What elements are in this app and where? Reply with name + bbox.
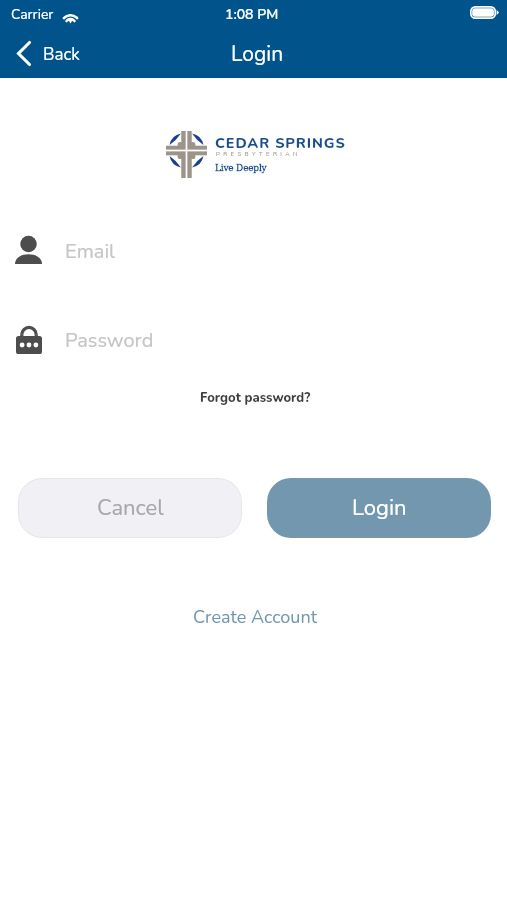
button[interactable]: Forgot password? bbox=[192, 381, 319, 415]
button[interactable]: Create Account bbox=[185, 597, 325, 638]
staticText: PRESBYTERIAN bbox=[216, 150, 301, 158]
staticText: Carrier bbox=[11, 5, 54, 24]
button[interactable]: Back bbox=[8, 33, 89, 73]
staticText: Live Deeply bbox=[215, 162, 267, 174]
button[interactable]: Cancel bbox=[18, 478, 242, 538]
other: Back bbox=[17, 41, 31, 66]
staticText: Login bbox=[231, 40, 284, 69]
staticText: Create Account bbox=[193, 605, 317, 630]
staticText: Cancel bbox=[97, 493, 164, 523]
staticText: Forgot password? bbox=[200, 389, 311, 407]
staticText: Email bbox=[65, 238, 115, 265]
staticText: Login bbox=[352, 493, 407, 523]
button[interactable]: Login bbox=[267, 478, 491, 538]
staticText: Back bbox=[43, 43, 80, 66]
staticText: CEDAR SPRINGS bbox=[215, 133, 346, 153]
staticText: 1:08 PM bbox=[225, 5, 279, 24]
staticText: Password bbox=[65, 327, 154, 354]
